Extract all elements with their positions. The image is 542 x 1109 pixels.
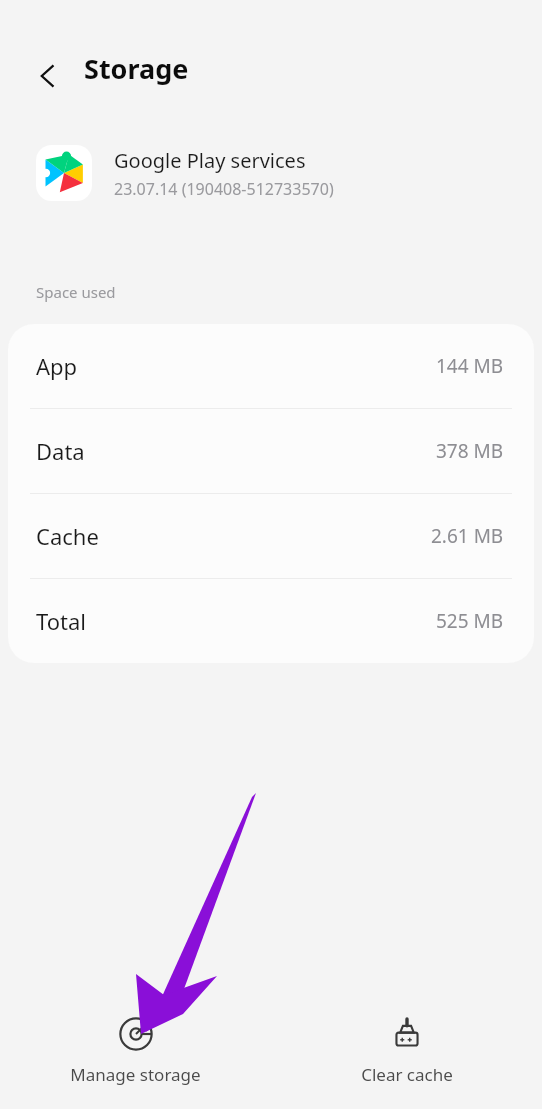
button[interactable]: Data [8,409,534,493]
staticText: Space used [36,282,116,302]
staticText: Clear cache [361,1063,453,1086]
staticText: Google Play services [114,147,306,174]
staticText: Cache [36,521,99,551]
button[interactable]: Cache [8,494,534,578]
button[interactable]: Total [8,579,534,663]
staticText: App [36,351,78,381]
button[interactable]: Google Play services [0,118,542,228]
staticText: 2.61 MB [431,523,504,549]
staticText: Manage storage [70,1063,201,1086]
staticText: 144 MB [436,353,504,379]
staticText: Total [36,606,86,636]
button[interactable]: Back [22,50,74,102]
staticText: 23.07.14 (190408-512733570) [114,178,334,200]
staticText: 525 MB [436,608,504,634]
staticText: 378 MB [436,438,504,464]
staticText: Storage [84,50,189,87]
button[interactable]: Clear cache [271,999,542,1086]
staticText: Data [36,436,85,466]
button[interactable]: App [8,324,534,408]
button[interactable]: Manage storage [0,999,271,1086]
